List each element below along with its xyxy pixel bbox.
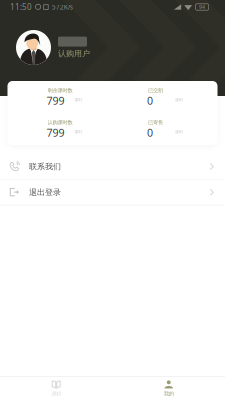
staticText: 799: [46, 125, 64, 140]
button[interactable]: 退出登录: [0, 180, 225, 205]
staticText: 课时: [74, 129, 82, 134]
staticText: 11:50: [10, 2, 32, 12]
staticText: 0: [147, 93, 153, 108]
staticText: 572K/s: [52, 3, 73, 11]
staticText: 课程: [51, 390, 61, 397]
staticText: 94: [199, 3, 205, 11]
button[interactable]: 我的: [112, 377, 225, 400]
staticText: 799: [46, 93, 64, 108]
staticText: 课时: [74, 97, 82, 102]
staticText: 认购课时数: [47, 119, 72, 126]
button[interactable]: 联系我们: [0, 154, 225, 179]
staticText: 退出登录: [29, 187, 61, 197]
staticText: 课时: [175, 97, 183, 102]
staticText: 课时: [175, 129, 183, 134]
staticText: 联系我们: [29, 162, 61, 171]
staticText: 已寄售: [148, 119, 163, 126]
staticText: 已交割: [148, 87, 163, 94]
staticText: 剩余课时数: [47, 87, 72, 94]
staticText: 我的: [164, 390, 174, 397]
staticText: 认购用户: [58, 49, 90, 58]
staticText: 0: [147, 125, 153, 140]
button[interactable]: 课程: [0, 377, 112, 400]
